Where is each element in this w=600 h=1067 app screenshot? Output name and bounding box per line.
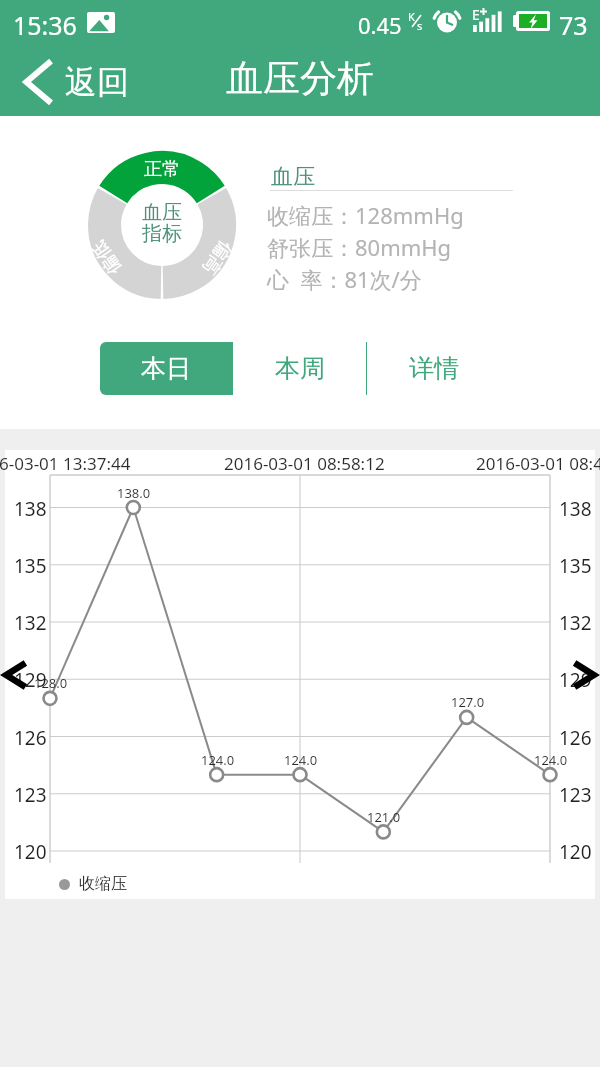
staticText: 舒张压：80mmHg <box>267 232 452 262</box>
staticText: 124.0 <box>534 751 568 769</box>
staticText: 详情 <box>409 353 459 384</box>
staticText: 124.0 <box>284 751 318 769</box>
button[interactable]: Back <box>0 47 149 116</box>
staticText: 126 <box>559 725 592 751</box>
staticText: 120 <box>559 839 592 865</box>
staticText: 135 <box>559 553 592 579</box>
staticText: 124.0 <box>201 751 235 769</box>
staticText: 132 <box>559 610 592 636</box>
staticText: 偏低 <box>87 236 127 279</box>
staticText: 132 <box>14 610 47 636</box>
button[interactable]: Next <box>572 660 598 690</box>
button[interactable]: 详情 <box>367 342 500 395</box>
staticText: 138 <box>14 496 47 522</box>
staticText: 129 <box>559 667 592 693</box>
staticText: 73 <box>559 8 588 42</box>
staticText: 0.45 <box>358 10 402 40</box>
staticText: 129 <box>14 667 47 693</box>
staticText: E <box>472 5 480 24</box>
staticText: 本周 <box>275 353 325 384</box>
staticText: 2016-03-01 08:4 <box>476 452 600 475</box>
staticText: 收缩压：128mmHg <box>267 200 464 230</box>
button[interactable]: 本日 <box>100 342 232 395</box>
staticText: 本日 <box>141 353 191 384</box>
staticText: 2016-03-01 08:58:12 <box>224 452 385 475</box>
staticText: 123 <box>559 782 592 808</box>
staticText: 126 <box>14 725 47 751</box>
staticText: 121.0 <box>367 808 401 826</box>
staticText: 指标 <box>142 221 182 246</box>
button[interactable]: Previous <box>2 660 28 690</box>
staticText: 6-03-01 13:37:44 <box>0 452 131 475</box>
staticText: 收缩压 <box>79 874 127 894</box>
staticText: K <box>408 9 415 24</box>
staticText: 15:36 <box>13 8 77 42</box>
staticText: 123 <box>14 782 47 808</box>
staticText: s <box>417 18 423 33</box>
staticText: 正常 <box>144 158 180 181</box>
staticText: 心 率：81次/分 <box>267 264 422 294</box>
staticText: 138.0 <box>117 484 151 502</box>
staticText: 128.0 <box>34 674 68 692</box>
staticText: 135 <box>14 553 47 579</box>
staticText: 120 <box>14 839 47 865</box>
staticText: 血压 <box>142 200 182 225</box>
staticText: 138 <box>559 496 592 522</box>
staticText: 血压 <box>271 163 315 191</box>
staticText: 127.0 <box>451 693 485 711</box>
staticText: 返回 <box>65 62 129 102</box>
button[interactable]: 本周 <box>233 342 366 395</box>
staticText: 偏高 <box>197 236 237 279</box>
staticText: 血压分析 <box>226 55 374 102</box>
